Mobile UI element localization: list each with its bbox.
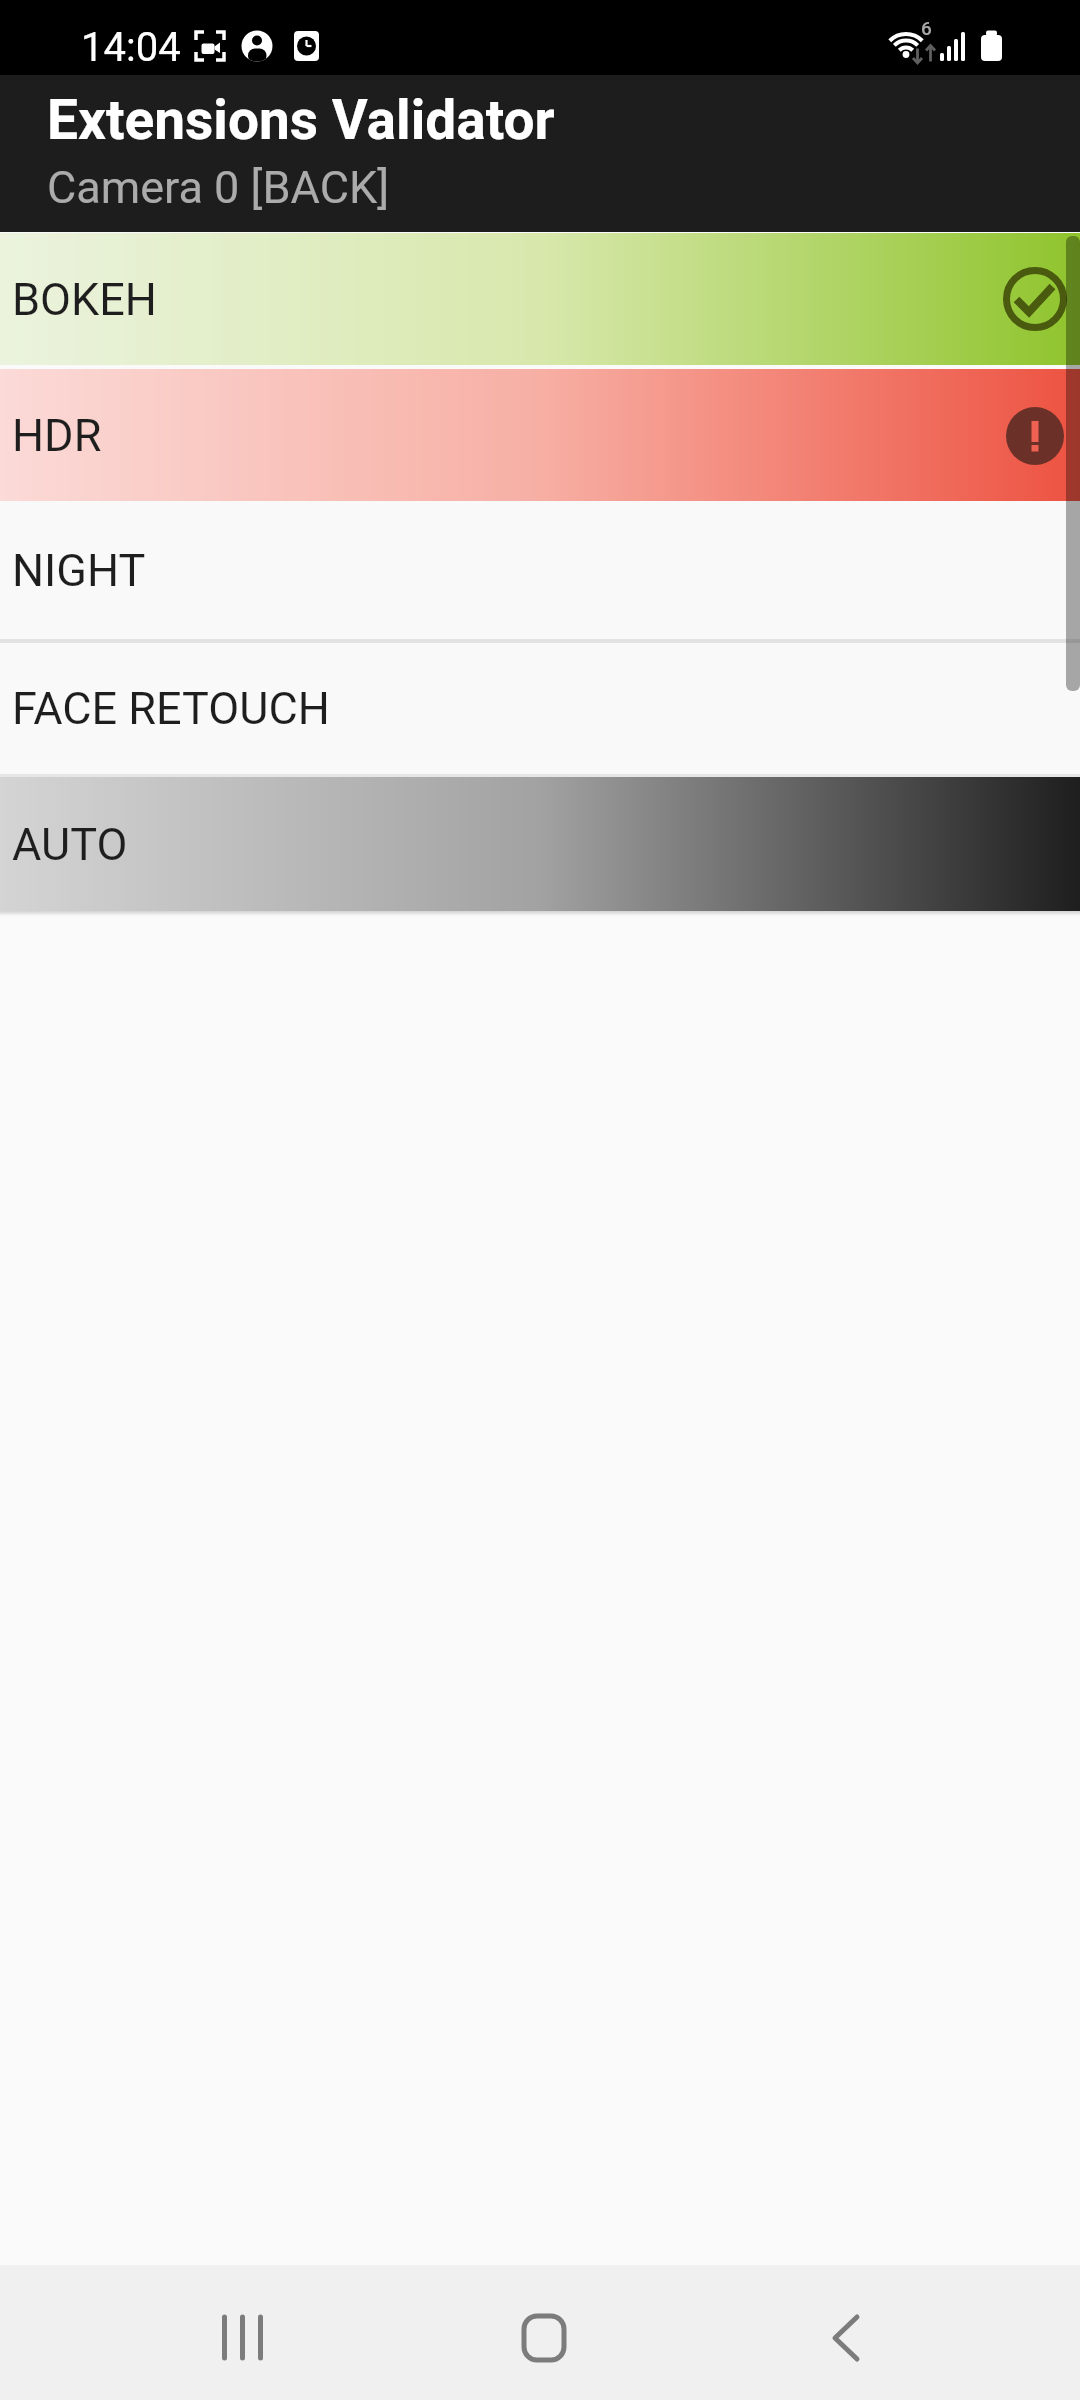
staticText: Camera 0 [BACK] (47, 161, 390, 214)
staticText: AUTO (12, 818, 128, 871)
staticText: NIGHT (12, 544, 146, 597)
staticText: 14:04 (81, 24, 181, 71)
staticText: FACE RETOUCH (12, 682, 330, 735)
staticText: HDR (12, 409, 102, 462)
staticText: Extensions Validator (47, 88, 555, 152)
staticText: BOKEH (12, 273, 157, 326)
staticText: 6 (921, 17, 932, 39)
